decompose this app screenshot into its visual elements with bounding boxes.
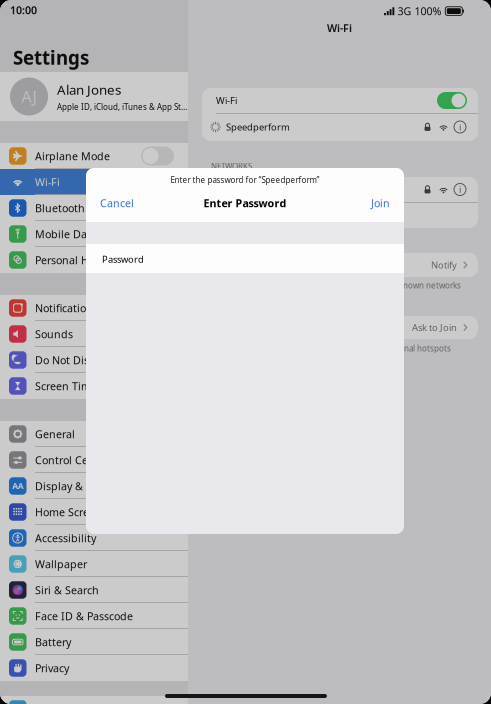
staticText: Bluetooth [35,201,85,215]
button[interactable]: Battery [0,629,188,655]
staticText: Cancel [100,196,134,210]
button[interactable]: Do Not Disturb [0,347,188,373]
button[interactable]: Privacy [0,655,188,681]
button[interactable]: Control Centre [0,447,188,473]
staticText: Wi-Fi [35,175,60,189]
button[interactable]: Notifications [0,295,188,321]
staticText: Face ID & Passcode [35,609,133,623]
staticText: Notify [431,259,457,271]
button[interactable]: Notify [202,253,478,277]
button[interactable]: Wi-Fi [0,169,188,195]
button[interactable]: Sounds [0,321,188,347]
staticText: Do Not Disturb [35,353,111,367]
staticText: Ask to Join [412,321,457,334]
staticText: Home Screen & Dock [35,505,141,519]
staticText: Control Centre [35,453,109,467]
staticText: Privacy [35,661,69,675]
staticText: Wallpaper [35,557,87,571]
button[interactable]: Airplane Mode [0,143,188,169]
staticText: Display & Brightness [35,479,141,493]
button[interactable]: Wallpaper [0,551,188,577]
staticText: 3G [397,4,411,18]
button[interactable]: AA [0,473,188,499]
staticText: Known networks will be joined automatica… [209,280,461,291]
button[interactable]: Join [350,192,404,214]
button[interactable]: AJ [0,72,188,121]
staticText: 10:00 [10,3,37,17]
staticText: Siri & Search [35,583,99,597]
button[interactable]: Accessibility [0,525,188,551]
staticText: Screen Time [35,379,97,393]
button[interactable]: Bluetooth [0,195,188,221]
staticText: Accessibility [35,531,96,545]
staticText: Mobile Data [35,227,97,241]
staticText: Speedperform [226,121,290,133]
staticText: Wi-Fi [216,94,237,107]
button[interactable]: Personal Hotspot [0,247,188,273]
staticText: Password [102,253,144,265]
button[interactable]: Siri & Search [0,577,188,603]
staticText: 100% [414,4,441,18]
staticText: AJ [21,86,36,107]
button[interactable]: Cancel [86,192,152,214]
staticText: Sounds [35,327,73,341]
button[interactable]: Ask to Join [202,316,478,339]
staticText: AA [11,479,25,493]
button[interactable]: Home Screen & Dock [0,499,188,525]
button[interactable]: App Store [0,696,188,704]
staticText: Enter Password [203,196,286,210]
button[interactable]: Mobile Data [0,221,188,247]
button[interactable]: Screen Time [0,373,188,399]
button[interactable]: Face ID & Passcode [0,603,188,629]
staticText: Battery [35,635,71,649]
staticText: NETWORKS [211,161,252,172]
staticText: available, you will be asked before join… [209,343,451,354]
staticText: Apple ID, iCloud, iTunes & App St… [57,101,187,112]
staticText: Personal Hotspot [35,253,121,267]
staticText: i [459,121,461,133]
staticText: Join [371,196,390,210]
staticText: Wi-Fi [327,21,352,35]
button[interactable]: General [0,421,188,447]
staticText: Alan Jones [57,81,121,98]
staticText: Settings [13,45,89,70]
staticText: General [35,427,75,441]
staticText: Notifications [35,301,98,315]
staticText: i [459,183,461,196]
staticText: Enter the password for “Speedperform” [170,175,319,185]
staticText: Airplane Mode [35,149,110,163]
